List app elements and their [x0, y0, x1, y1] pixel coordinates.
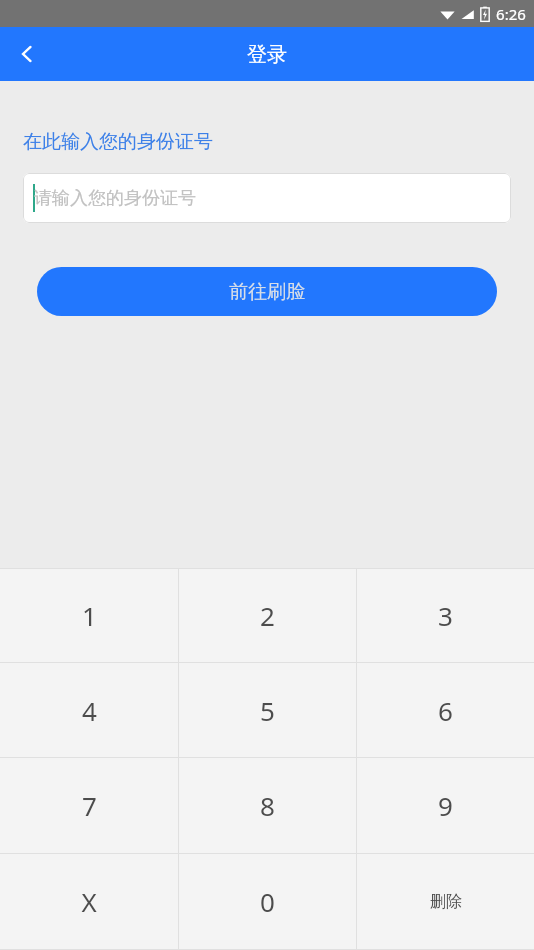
staticText: 2	[260, 598, 275, 633]
staticText: 3	[438, 598, 453, 633]
staticText: 1	[82, 598, 97, 633]
button[interactable]: 前往刷脸	[37, 267, 497, 316]
button[interactable]: 7	[0, 758, 178, 853]
button[interactable]: 0	[179, 854, 356, 949]
staticText: 4	[82, 693, 97, 728]
staticText: 6:26	[496, 4, 526, 24]
button[interactable]: 4	[0, 663, 178, 757]
staticText: 5	[260, 693, 275, 728]
button[interactable]: 5	[179, 663, 356, 757]
button[interactable]: X	[0, 854, 178, 949]
button[interactable]: Back	[0, 27, 54, 81]
staticText: 7	[82, 788, 97, 823]
staticText: 9	[438, 788, 453, 823]
staticText: X	[81, 884, 97, 919]
staticText: 登录	[247, 42, 287, 67]
button[interactable]: 9	[357, 758, 534, 853]
button[interactable]: 3	[357, 569, 534, 662]
button[interactable]: 删除	[357, 854, 534, 949]
button[interactable]: 请输入您的身份证号	[23, 173, 511, 223]
staticText: 在此输入您的身份证号	[23, 130, 213, 154]
button[interactable]: 8	[179, 758, 356, 853]
button[interactable]: 6	[357, 663, 534, 757]
button[interactable]: 2	[179, 569, 356, 662]
staticText: 8	[260, 788, 275, 823]
staticText: 请输入您的身份证号	[34, 187, 196, 210]
staticText: 删除	[430, 892, 462, 912]
staticText: 0	[260, 884, 275, 919]
staticText: 6	[438, 693, 453, 728]
staticText: 前往刷脸	[229, 280, 305, 304]
button[interactable]: 1	[0, 569, 178, 662]
